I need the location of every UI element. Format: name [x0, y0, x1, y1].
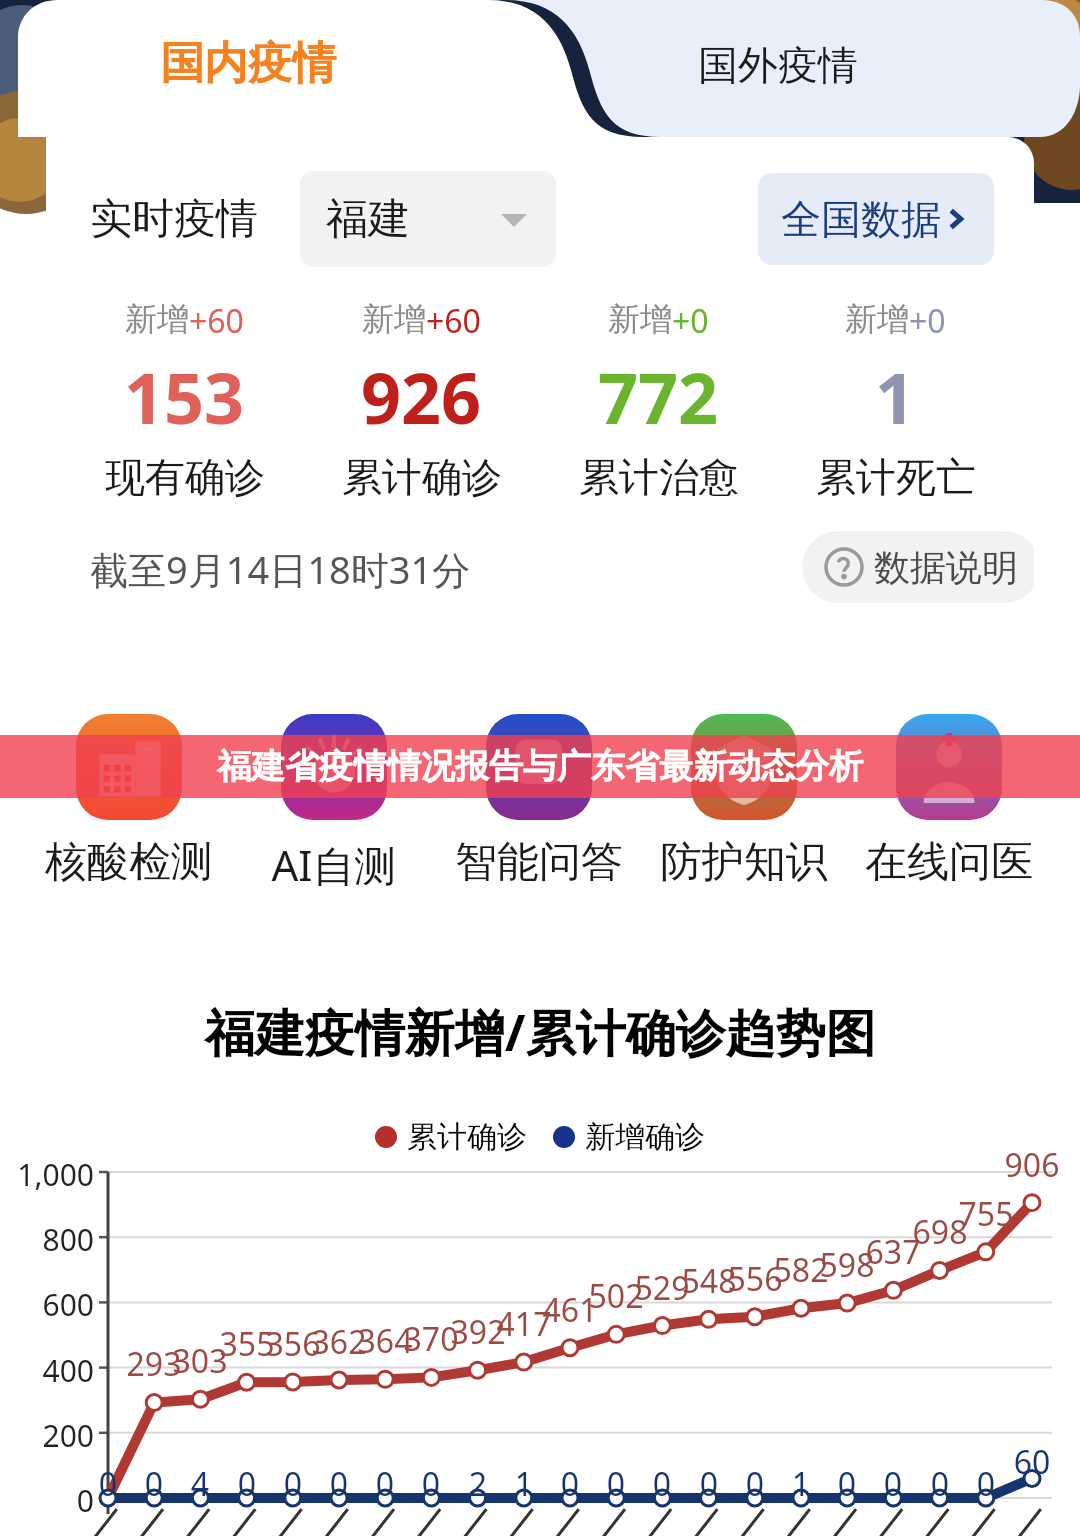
- staticText: 0: [910, 1462, 970, 1506]
- staticText: +60: [426, 299, 481, 343]
- staticText: 全国数据: [781, 194, 941, 244]
- button[interactable]: 智能问答: [439, 714, 639, 889]
- staticText: 60: [996, 1440, 1068, 1484]
- staticText: 累计死亡: [816, 452, 976, 502]
- staticText: 4: [170, 1462, 230, 1506]
- staticText: 现有确诊: [105, 452, 265, 502]
- staticText: 新增: [608, 299, 672, 339]
- staticText: 0: [355, 1462, 415, 1506]
- staticText: 防护知识: [660, 836, 828, 889]
- staticText: 0: [540, 1462, 600, 1506]
- staticText: 755: [948, 1192, 1024, 1236]
- staticText: 1: [771, 1462, 831, 1506]
- staticText: 355: [209, 1322, 285, 1366]
- staticText: 累计确诊: [342, 452, 502, 502]
- staticText: 698: [902, 1210, 978, 1254]
- staticText: 累计确诊: [407, 1118, 527, 1156]
- staticText: 0: [78, 1462, 138, 1506]
- staticText: 800: [0, 1219, 94, 1260]
- staticText: 529: [624, 1266, 700, 1310]
- staticText: 新增: [362, 299, 426, 339]
- button[interactable]: 新增: [777, 299, 1014, 502]
- staticText: 0: [586, 1462, 646, 1506]
- button[interactable]: 国外疫情: [0, 0, 1080, 137]
- staticText: 364: [347, 1319, 423, 1363]
- button[interactable]: 国内疫情: [0, 0, 1080, 137]
- staticText: 国外疫情: [698, 40, 858, 90]
- staticText: 598: [809, 1243, 885, 1287]
- staticText: 417: [486, 1302, 562, 1346]
- staticText: 356: [255, 1322, 331, 1366]
- staticText: 303: [162, 1339, 238, 1383]
- button[interactable]: 新增: [540, 299, 777, 502]
- button[interactable]: 福建: [300, 171, 556, 267]
- button[interactable]: 数据说明: [824, 531, 1018, 603]
- staticText: 0: [263, 1462, 323, 1506]
- staticText: 截至9月14日18时31分: [90, 543, 471, 595]
- staticText: 0: [217, 1462, 277, 1506]
- staticText: 福建: [326, 193, 410, 246]
- staticText: 392: [440, 1310, 516, 1354]
- staticText: 582: [763, 1248, 839, 1292]
- staticText: 200: [0, 1415, 94, 1456]
- staticText: 772: [598, 349, 719, 444]
- button[interactable]: 新增: [66, 299, 303, 502]
- staticText: 0: [863, 1462, 923, 1506]
- staticText: 0: [817, 1462, 877, 1506]
- staticText: 国内疫情: [160, 36, 336, 91]
- staticText: 智能问答: [455, 836, 623, 889]
- staticText: 0: [0, 1480, 94, 1521]
- button[interactable]: 在线问医: [849, 714, 1049, 889]
- staticText: 0: [401, 1462, 461, 1506]
- button[interactable]: AI自测: [234, 714, 434, 893]
- staticText: 548: [671, 1259, 747, 1303]
- staticText: 153: [124, 349, 245, 444]
- staticText: 2: [448, 1462, 508, 1506]
- staticText: 0: [124, 1462, 184, 1506]
- staticText: 556: [717, 1257, 793, 1301]
- staticText: 核酸检测: [45, 836, 213, 889]
- staticText: 906: [994, 1143, 1070, 1187]
- staticText: 数据说明: [874, 545, 1018, 590]
- staticText: 637: [855, 1230, 931, 1274]
- staticText: 福建疫情新增/累计确诊趋势图: [0, 998, 1080, 1066]
- staticText: +0: [909, 299, 946, 343]
- staticText: 362: [301, 1320, 377, 1364]
- button[interactable]: 全国数据: [758, 173, 994, 265]
- staticText: 在线问医: [865, 836, 1033, 889]
- staticText: 0: [309, 1462, 369, 1506]
- staticText: 461: [532, 1288, 608, 1332]
- staticText: 0: [725, 1462, 785, 1506]
- staticText: 926: [361, 349, 482, 444]
- staticText: 0: [956, 1462, 1016, 1506]
- staticText: 600: [0, 1284, 94, 1325]
- button[interactable]: 新增: [303, 299, 540, 502]
- staticText: 0: [632, 1462, 692, 1506]
- staticText: +0: [672, 299, 709, 343]
- staticText: 400: [0, 1350, 94, 1391]
- staticText: 1: [494, 1462, 554, 1506]
- staticText: 福建省疫情情况报告与广东省最新动态分析: [217, 745, 863, 788]
- staticText: 累计治愈: [579, 452, 739, 502]
- staticText: 新增: [125, 299, 189, 339]
- staticText: 1,000: [0, 1154, 94, 1195]
- staticText: 502: [578, 1274, 654, 1318]
- staticText: 293: [116, 1342, 192, 1386]
- staticText: 0: [679, 1462, 739, 1506]
- staticText: 实时疫情: [90, 193, 258, 246]
- button[interactable]: 防护知识: [644, 714, 844, 889]
- staticText: 新增: [845, 299, 909, 339]
- staticText: 370: [393, 1317, 469, 1361]
- staticText: 1: [875, 349, 916, 444]
- staticText: AI自测: [271, 836, 397, 893]
- staticText: +60: [189, 299, 244, 343]
- staticText: 新增确诊: [585, 1118, 705, 1156]
- button[interactable]: 核酸检测: [29, 714, 229, 889]
